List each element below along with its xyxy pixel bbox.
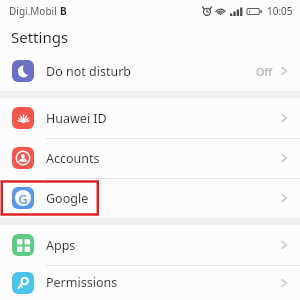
staticText: Huawei ID <box>46 110 107 127</box>
other: Open <box>280 191 288 205</box>
staticText: Google <box>46 190 89 207</box>
button[interactable]: Do not disturb <box>0 51 300 91</box>
staticText: B <box>60 4 67 18</box>
staticText: Do not disturb <box>46 63 131 80</box>
other: Open <box>280 276 288 290</box>
other: Open <box>280 64 288 78</box>
staticText: Settings <box>11 27 69 47</box>
other: Open <box>280 151 288 165</box>
staticText: 10:05 <box>267 4 293 18</box>
button[interactable]: G <box>0 178 300 218</box>
button[interactable]: Apps <box>0 225 300 265</box>
other: Open <box>280 238 288 252</box>
staticText: Permissions <box>46 274 118 291</box>
staticText: Off <box>256 64 273 79</box>
button[interactable]: Permissions <box>0 265 300 300</box>
staticText: Accounts <box>46 150 100 167</box>
button[interactable]: Huawei ID <box>0 98 300 138</box>
staticText: Digi.Mobil <box>9 4 60 18</box>
button[interactable]: Accounts <box>0 138 300 178</box>
staticText: G <box>18 190 28 206</box>
staticText: Apps <box>46 237 76 254</box>
other: Open <box>280 111 288 125</box>
